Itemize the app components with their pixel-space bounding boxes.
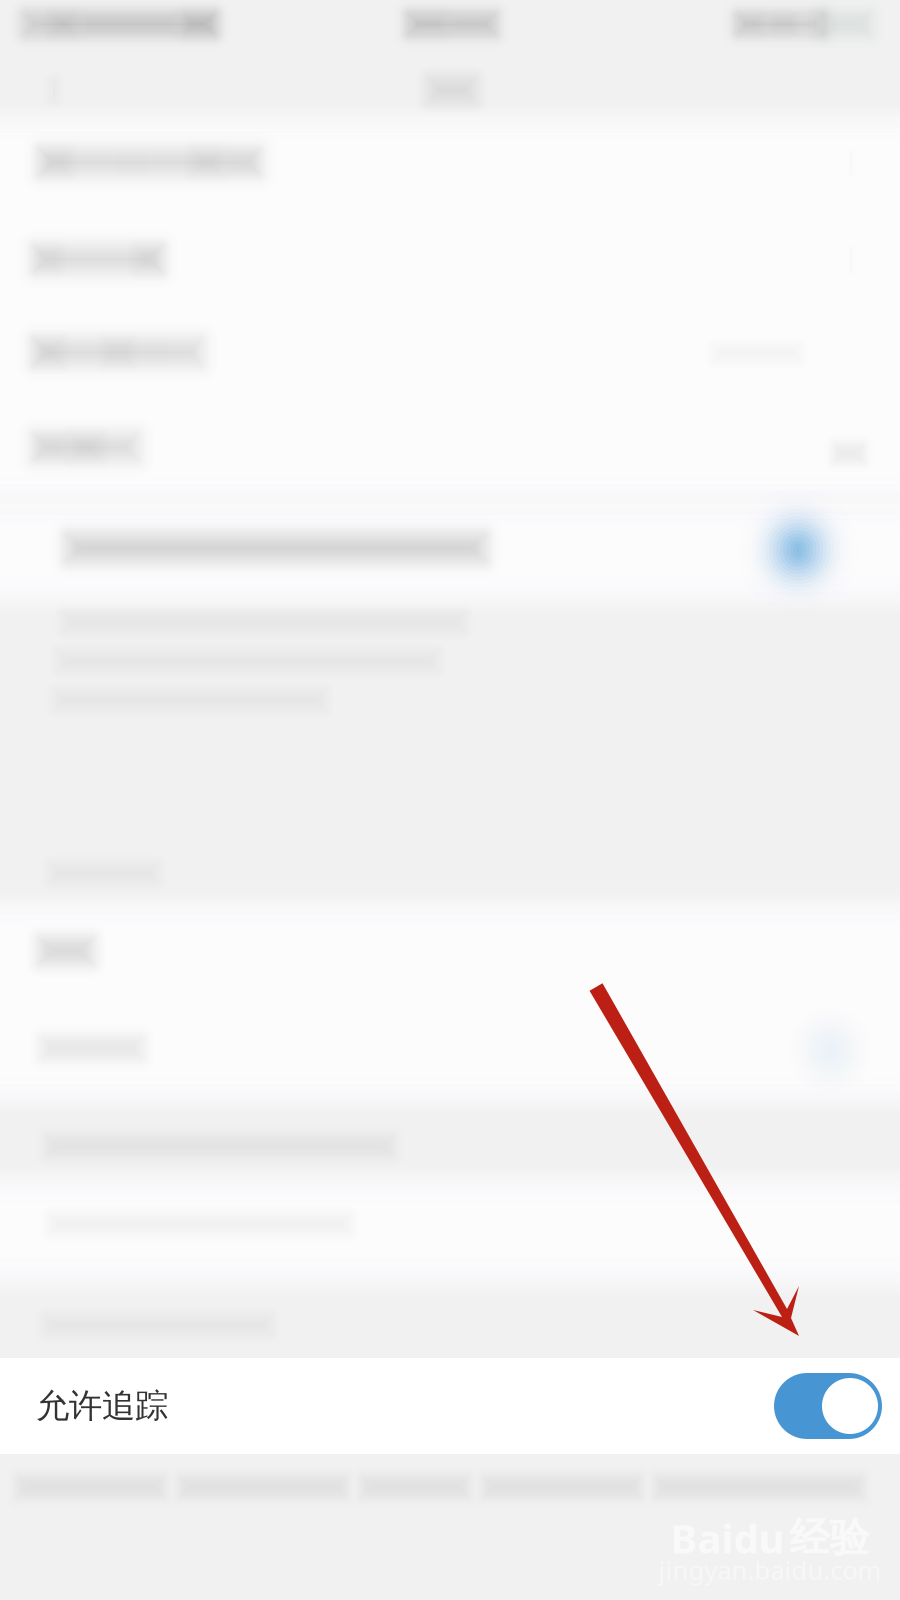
staticText: 允许追踪 — [36, 1385, 168, 1426]
button[interactable]: 允许追踪 — [0, 1358, 900, 1454]
staticText: 经验 — [789, 1513, 869, 1562]
staticText: Baidu — [670, 1511, 784, 1564]
